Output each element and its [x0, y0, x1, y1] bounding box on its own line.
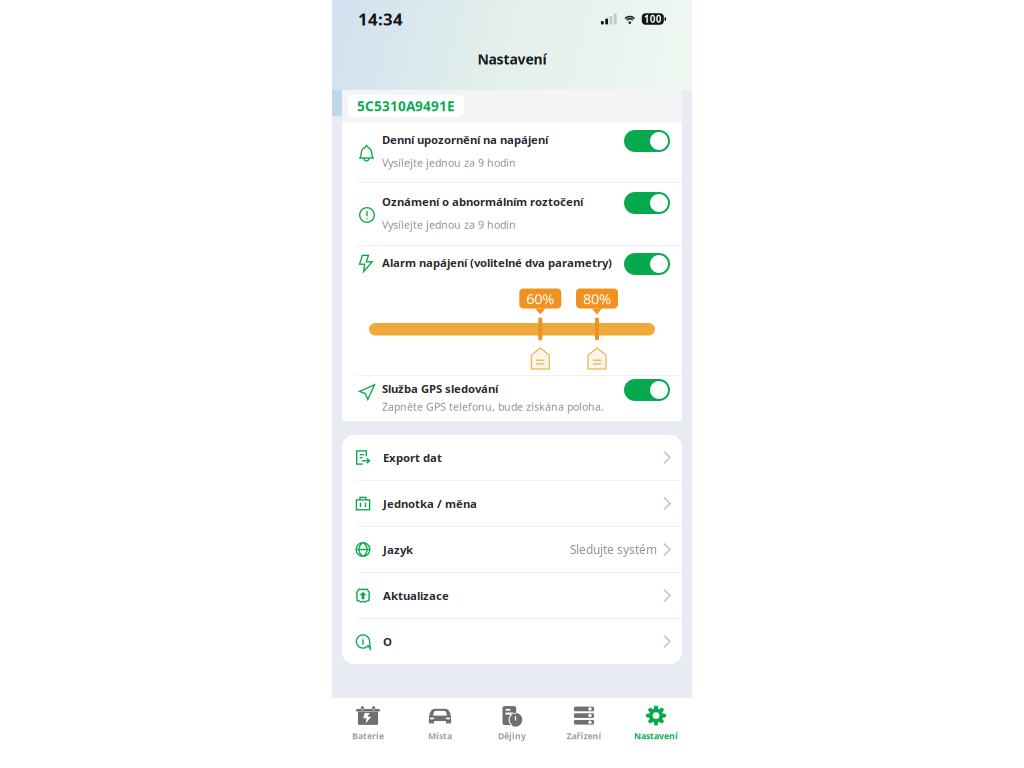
button[interactable]: Aktualizace	[342, 573, 682, 618]
button[interactable]: Přepínač	[624, 379, 670, 401]
button[interactable]: Místa	[404, 704, 476, 744]
button[interactable]: Jednotka / měna	[342, 481, 682, 526]
button[interactable]: Oznámení o abnormálním roztočení	[342, 183, 682, 245]
button[interactable]: Jazyk	[342, 527, 682, 572]
button[interactable]: Nastavení	[620, 704, 692, 744]
staticText: 80%	[583, 288, 611, 308]
staticText: 60%	[526, 288, 554, 308]
staticText: 5C5310A9491E	[357, 97, 455, 115]
button[interactable]: Denní upozornění na napájení	[342, 122, 682, 182]
staticText: Export dat	[383, 450, 442, 465]
staticText: Zapněte GPS telefonu, bude získána poloh…	[382, 399, 604, 414]
button[interactable]: Přepínač	[624, 130, 670, 152]
button[interactable]: Export dat	[342, 435, 682, 480]
staticText: Nastavení	[477, 49, 546, 69]
button[interactable]: O	[342, 619, 682, 664]
staticText: Baterie	[352, 730, 384, 742]
staticText: Jazyk	[383, 542, 413, 557]
staticText: Vysílejte jednou za 9 hodin	[382, 217, 516, 232]
staticText: O	[383, 634, 392, 649]
staticText: Místa	[428, 730, 452, 742]
staticText: Vysílejte jednou za 9 hodin	[382, 155, 516, 170]
staticText: Alarm napájení (volitelné dva parametry)	[382, 255, 612, 270]
staticText: Oznámení o abnormálním roztočení	[382, 194, 583, 209]
staticText: Aktualizace	[383, 588, 449, 603]
staticText: Jednotka / měna	[383, 496, 477, 511]
staticText: 14:34	[358, 8, 403, 30]
button[interactable]: Zařízení	[548, 704, 620, 744]
button[interactable]: Dějiny	[476, 704, 548, 744]
button[interactable]: Služba GPS sledování	[342, 376, 682, 421]
staticText: Služba GPS sledování	[382, 381, 498, 396]
staticText: Denní upozornění na napájení	[382, 132, 548, 147]
staticText: Sledujte systém	[570, 541, 657, 557]
button[interactable]: Přepínač	[624, 253, 670, 275]
button[interactable]: Baterie	[332, 704, 404, 744]
staticText: Dějiny	[498, 730, 526, 742]
button[interactable]: Alarm napájení (volitelné dva parametry)	[342, 246, 682, 287]
staticText: 100	[644, 12, 662, 26]
staticText: Zařízení	[566, 730, 601, 742]
staticText: Nastavení	[634, 730, 678, 742]
button[interactable]: Přepínač	[624, 192, 670, 214]
